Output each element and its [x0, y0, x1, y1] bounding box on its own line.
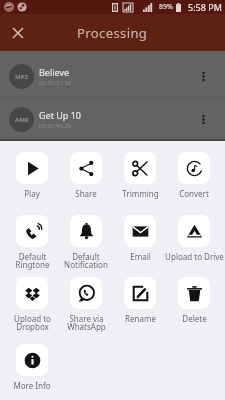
staticText: Default Notification [64, 251, 108, 270]
button[interactable]: Play [5, 152, 59, 199]
staticText: Share via WhatsApp [67, 313, 106, 332]
staticText: Trimming [122, 188, 159, 199]
button[interactable]: Default Notification [59, 215, 113, 270]
staticText: Upload to Drive [165, 251, 224, 262]
button[interactable]: Share via WhatsApp [59, 277, 113, 332]
staticText: Get Up 10 [39, 109, 81, 121]
staticText: More Info [13, 380, 51, 391]
staticText: 5:58 PM [188, 1, 222, 13]
button[interactable]: Default Ringtone [5, 215, 59, 270]
button[interactable]: Rename [113, 277, 167, 324]
button[interactable]: More options [191, 64, 215, 88]
button[interactable]: Share [59, 152, 113, 199]
staticText: Share [75, 188, 97, 199]
staticText: Upload to Dropbox [14, 313, 51, 332]
staticText: Processing [77, 24, 148, 42]
button[interactable]: Email [113, 215, 167, 262]
staticText: 00:05:31.86 [39, 79, 72, 87]
button[interactable]: Close [4, 19, 32, 47]
staticText: AMR [15, 116, 29, 124]
staticText: Email [130, 251, 151, 262]
button[interactable]: Upload to Drive [167, 215, 221, 262]
staticText: 89% [159, 2, 173, 12]
staticText: Convert [179, 188, 209, 199]
button[interactable]: More Info [5, 344, 59, 391]
button[interactable]: Delete [167, 277, 221, 324]
staticText: Delete [182, 313, 207, 324]
staticText: Believe [39, 66, 70, 78]
button[interactable]: More options [191, 107, 215, 131]
staticText: Rename [125, 313, 156, 324]
button[interactable]: Upload to Dropbox [5, 277, 59, 332]
button[interactable]: MP3 [0, 55, 225, 97]
button[interactable]: Convert [167, 152, 221, 199]
staticText: Play [24, 188, 40, 199]
staticText: Default Ringtone [15, 251, 50, 270]
button[interactable]: Trimming [113, 152, 167, 199]
staticText: 00:05:45.29 [39, 122, 72, 130]
button[interactable]: AMR [0, 98, 225, 140]
staticText: MP3 [15, 73, 28, 81]
